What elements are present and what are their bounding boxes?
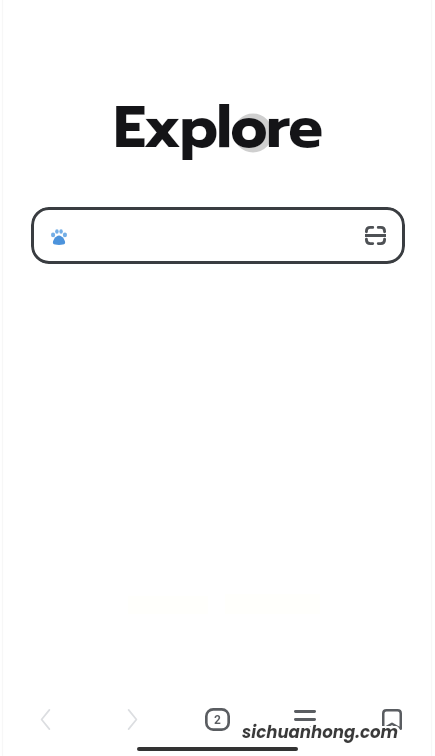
staticText: sichuanhong.com (240, 721, 397, 744)
staticText: sichuanhong.com (242, 719, 399, 742)
staticText: sichuanhong.com (243, 719, 400, 742)
staticText: sichuanhong.com (244, 722, 401, 745)
button[interactable]: Tabs, 2 open (174, 701, 261, 737)
staticText: sichuanhong.com (240, 722, 397, 745)
staticText: 2 (214, 713, 221, 727)
staticText: sichuanhong.com (242, 721, 399, 744)
staticText: sichuanhong.com (240, 720, 397, 743)
staticText: sichuanhong.com (243, 720, 400, 743)
staticText: sichuanhong.com (242, 723, 399, 746)
button[interactable]: Forward (87, 701, 174, 737)
staticText: sichuanhong.com (244, 721, 401, 744)
button[interactable]: Menu (261, 701, 348, 737)
staticText: sichuanhong.com (241, 719, 398, 742)
button[interactable]: Back (0, 701, 87, 737)
staticText: sichuanhong.com (244, 720, 401, 743)
staticText: Explore (113, 84, 322, 171)
button[interactable]: Bookmarks (348, 701, 435, 737)
staticText: sichuanhong.com (241, 722, 398, 745)
staticText: sichuanhong.com (241, 721, 398, 744)
staticText: sichuanhong.com (242, 720, 399, 743)
staticText: sichuanhong.com (241, 723, 398, 746)
staticText: sichuanhong.com (241, 720, 398, 743)
staticText: sichuanhong.com (243, 721, 400, 744)
button[interactable]: Scan code (365, 226, 386, 245)
button[interactable]: Scan code (31, 207, 405, 264)
staticText: sichuanhong.com (243, 722, 400, 745)
staticText: sichuanhong.com (242, 722, 399, 745)
staticText: sichuanhong.com (243, 723, 400, 746)
